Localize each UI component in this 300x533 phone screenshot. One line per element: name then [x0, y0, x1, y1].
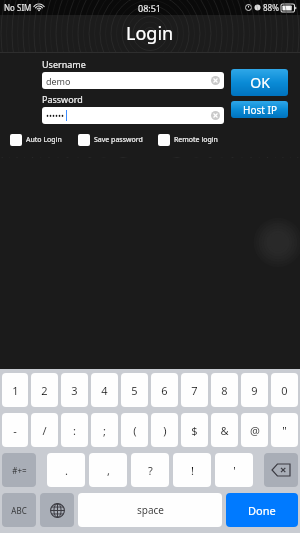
staticText: ABC	[11, 505, 27, 516]
staticText: &	[220, 423, 229, 438]
button[interactable]: ,	[89, 453, 127, 487]
staticText: 4	[101, 383, 108, 398]
staticText: 2	[41, 383, 48, 398]
staticText: Login	[126, 21, 174, 46]
staticText: $	[191, 423, 198, 438]
staticText: Username	[42, 58, 86, 70]
button[interactable]: Auto Login	[8, 132, 64, 148]
staticText: ;	[103, 423, 106, 438]
button[interactable]: &	[211, 413, 238, 447]
staticText: ,	[107, 463, 110, 478]
staticText: 0	[281, 383, 288, 398]
button[interactable]: Clear	[211, 76, 220, 85]
staticText: 1	[12, 383, 19, 398]
staticText: :	[73, 423, 76, 438]
button[interactable]: ;	[91, 413, 118, 447]
staticText: "	[282, 423, 287, 438]
button[interactable]: Remote login	[156, 132, 220, 148]
staticText: 8	[221, 383, 228, 398]
button[interactable]: Done	[226, 493, 298, 527]
staticText: .	[65, 463, 68, 478]
button[interactable]: ?	[131, 453, 169, 487]
button[interactable]: "	[271, 413, 298, 447]
button[interactable]: #+=	[2, 453, 36, 487]
button[interactable]: ••••••	[42, 107, 224, 124]
staticText: /	[42, 423, 47, 438]
button[interactable]: demo	[42, 72, 224, 89]
button[interactable]: /	[31, 413, 58, 447]
staticText: demo	[46, 75, 71, 87]
staticText: Password	[42, 93, 83, 105]
button[interactable]: Host IP	[231, 101, 288, 118]
staticText: space	[137, 503, 164, 517]
staticText: !	[191, 463, 194, 478]
staticText: Done	[248, 503, 276, 518]
button[interactable]: .	[47, 453, 85, 487]
staticText: Save password	[94, 135, 143, 145]
button[interactable]: !	[173, 453, 211, 487]
button[interactable]: 7	[181, 373, 208, 407]
staticText: #+=	[12, 465, 27, 476]
staticText: Remote login	[174, 135, 218, 145]
button[interactable]: Save password	[76, 132, 145, 148]
button[interactable]: 6	[151, 373, 178, 407]
staticText: Auto Login	[26, 135, 62, 145]
staticText: 5	[131, 383, 138, 398]
button[interactable]: 3	[61, 373, 88, 407]
staticText: (	[133, 423, 137, 438]
button[interactable]: Change keyboard	[40, 493, 74, 527]
button[interactable]: Backspace	[264, 453, 298, 487]
staticText: No SIM	[4, 2, 32, 13]
staticText: Host IP	[243, 103, 277, 117]
staticText: 3	[71, 383, 78, 398]
button[interactable]: '	[215, 453, 253, 487]
button[interactable]: 0	[271, 373, 298, 407]
button[interactable]: :	[61, 413, 88, 447]
button[interactable]: ABC	[2, 493, 36, 527]
staticText: '	[233, 463, 236, 478]
staticText: 9	[251, 383, 258, 398]
staticText: 88%	[263, 2, 279, 13]
staticText: 08:51	[138, 2, 162, 14]
button[interactable]: 2	[31, 373, 58, 407]
staticText: ••••••	[46, 110, 65, 121]
button[interactable]: 8	[211, 373, 238, 407]
button[interactable]: @	[241, 413, 268, 447]
staticText: @	[250, 423, 260, 438]
button[interactable]: (	[121, 413, 148, 447]
button[interactable]: 9	[241, 373, 268, 407]
button[interactable]: 4	[91, 373, 118, 407]
button[interactable]: Clear	[211, 111, 220, 120]
staticText: ?	[148, 463, 153, 478]
button[interactable]: $	[181, 413, 208, 447]
button[interactable]: )	[151, 413, 178, 447]
staticText: 7	[191, 383, 198, 398]
staticText: -	[13, 423, 17, 438]
staticText: )	[163, 423, 167, 438]
staticText: OK	[250, 73, 270, 92]
staticText: 6	[161, 383, 168, 398]
button[interactable]: 1	[2, 373, 28, 407]
button[interactable]: 5	[121, 373, 148, 407]
button[interactable]: OK	[231, 69, 288, 96]
button[interactable]: space	[78, 493, 222, 527]
button[interactable]: -	[2, 413, 28, 447]
